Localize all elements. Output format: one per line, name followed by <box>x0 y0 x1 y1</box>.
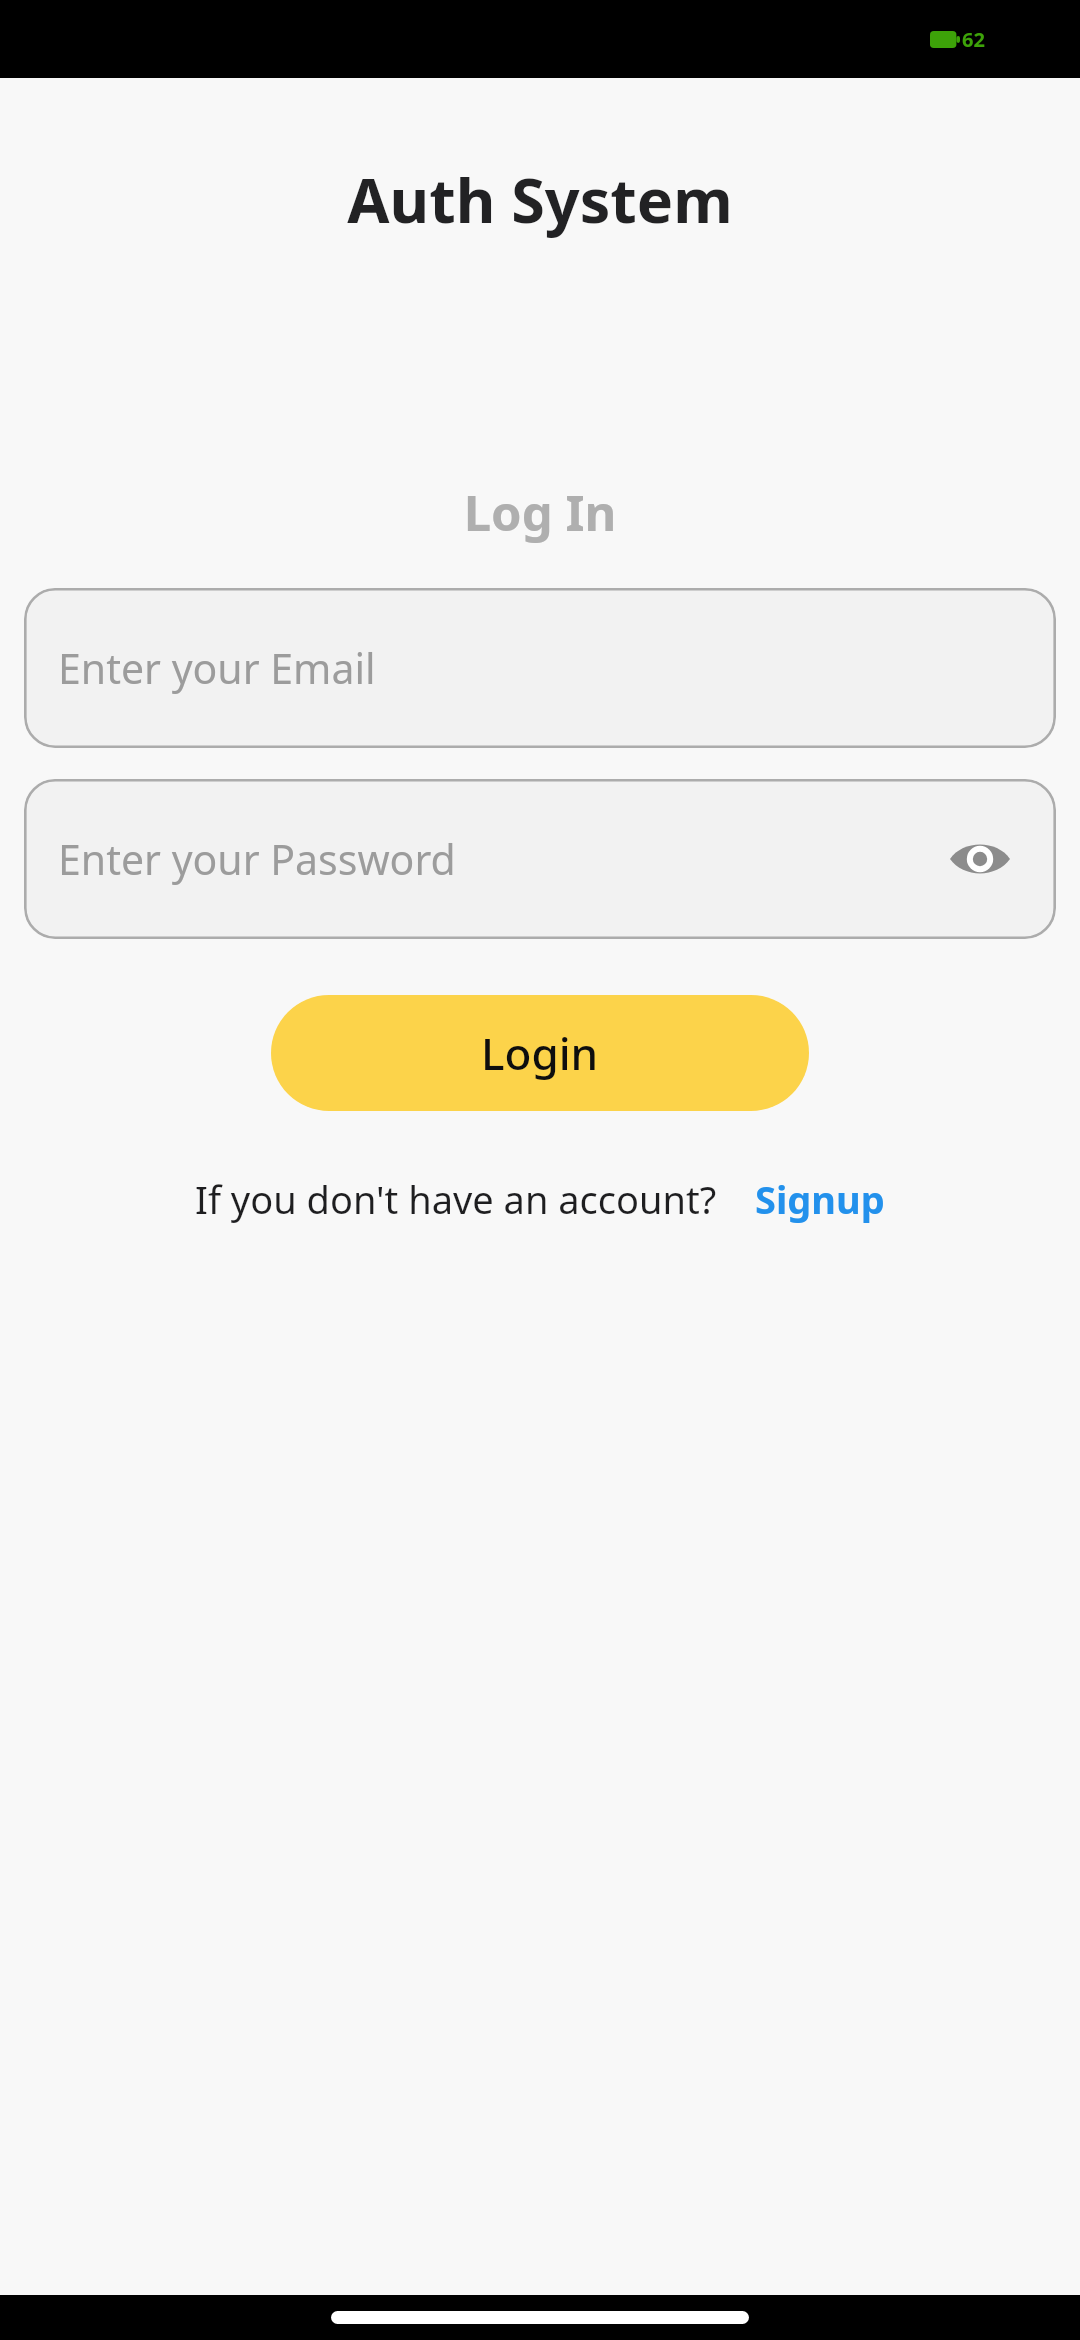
button[interactable]: Show password <box>944 823 1016 895</box>
staticText: Auth System <box>0 158 1080 241</box>
staticText: Signup <box>755 1173 885 1225</box>
staticText: Enter your Email <box>58 640 376 696</box>
staticText: If you don't have an account? <box>195 1173 717 1225</box>
staticText: Log In <box>0 479 1080 546</box>
staticText: Enter your Password <box>58 831 456 887</box>
button[interactable]: Enter your Email <box>24 588 1056 748</box>
staticText: Login <box>481 1023 599 1083</box>
staticText: 62 <box>962 26 985 53</box>
button[interactable]: Login <box>271 995 809 1111</box>
button[interactable]: Signup <box>755 1173 885 1225</box>
button[interactable]: Enter your Password <box>24 779 1056 939</box>
